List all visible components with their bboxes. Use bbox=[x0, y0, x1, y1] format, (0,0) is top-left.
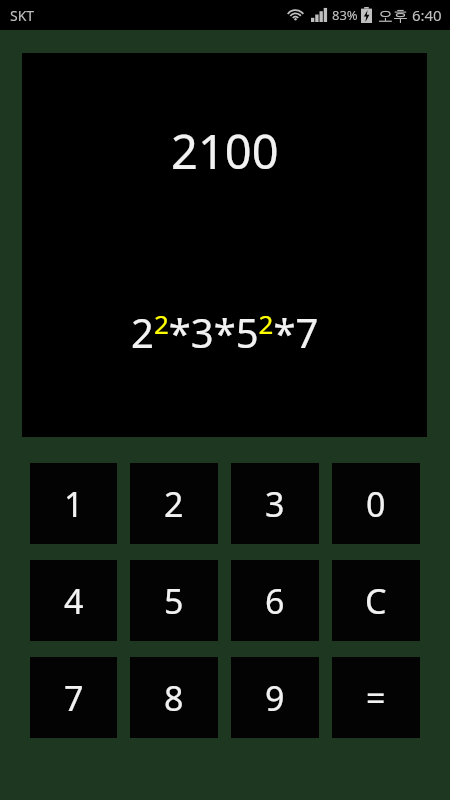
button[interactable]: 8 bbox=[130, 657, 218, 738]
button[interactable]: 6 bbox=[231, 560, 319, 641]
button[interactable]: C bbox=[332, 560, 420, 641]
button[interactable]: 1 bbox=[30, 463, 117, 544]
staticText: = bbox=[366, 675, 386, 721]
staticText: 5 bbox=[164, 578, 184, 624]
staticText: 3 bbox=[265, 481, 285, 527]
staticText: 2100 bbox=[171, 119, 279, 183]
staticText: 8 bbox=[164, 675, 184, 721]
staticText: 4 bbox=[64, 578, 84, 624]
button[interactable]: 2 bbox=[130, 463, 218, 544]
staticText: 6 bbox=[265, 578, 285, 624]
button[interactable]: 9 bbox=[231, 657, 319, 738]
staticText: 2 bbox=[164, 481, 184, 527]
button[interactable]: 0 bbox=[332, 463, 420, 544]
button[interactable]: 4 bbox=[30, 560, 117, 641]
staticText: 7 bbox=[64, 675, 84, 721]
staticText: 1 bbox=[64, 481, 84, 527]
staticText: 22*3*52*7 bbox=[131, 305, 319, 359]
staticText: 9 bbox=[265, 675, 285, 721]
staticText: C bbox=[365, 578, 387, 624]
button[interactable]: 3 bbox=[231, 463, 319, 544]
staticText: 오후 6:40 bbox=[378, 5, 442, 25]
button[interactable]: 5 bbox=[130, 560, 218, 641]
staticText: 83% bbox=[332, 6, 358, 24]
staticText: 0 bbox=[366, 481, 386, 527]
button[interactable]: = bbox=[332, 657, 420, 738]
button[interactable]: 7 bbox=[30, 657, 117, 738]
staticText: SKT bbox=[10, 6, 35, 25]
